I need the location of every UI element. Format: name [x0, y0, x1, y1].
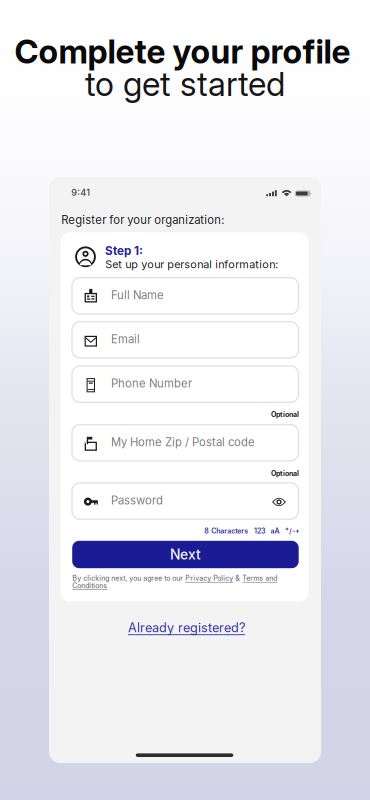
staticText: 123 — [254, 527, 265, 535]
staticText: Phone Number — [111, 377, 192, 390]
staticText: Optional — [271, 410, 299, 419]
staticText: Register for your organization: — [61, 213, 224, 227]
button[interactable]: Full Name — [72, 278, 298, 314]
staticText: Conditions — [72, 581, 107, 590]
button[interactable]: Already registered? — [128, 620, 245, 635]
staticText: Optional — [271, 469, 299, 478]
staticText: */-+ — [285, 527, 300, 535]
staticText: Step 1: — [105, 244, 143, 258]
staticText: Next — [170, 546, 201, 563]
staticText: Email — [111, 332, 140, 346]
staticText: Full Name — [111, 288, 164, 302]
button[interactable]: Password — [72, 483, 298, 519]
button[interactable]: My Home Zip / Postal code — [72, 425, 298, 461]
staticText: By clicking next, you agree to our — [72, 574, 185, 582]
button[interactable]: Privacy Policy — [185, 574, 233, 582]
staticText: 9:41 — [71, 187, 90, 198]
staticText: Privacy Policy — [185, 574, 233, 582]
staticText: to get started — [85, 64, 285, 104]
staticText: My Home Zip / Postal code — [111, 435, 255, 449]
button[interactable]: Terms and — [242, 574, 277, 582]
staticText: 8 Characters — [204, 527, 248, 535]
staticText: Set up your personal information: — [105, 258, 278, 271]
staticText: Complete your profile — [14, 32, 350, 71]
button[interactable]: Email — [72, 322, 298, 358]
staticText: & — [233, 574, 242, 582]
staticText: Password — [111, 493, 163, 507]
button[interactable]: Show password — [266, 489, 292, 515]
button[interactable]: Conditions — [72, 581, 107, 590]
staticText: aA — [270, 527, 279, 535]
staticText: Already registered? — [128, 620, 245, 635]
button[interactable]: Next — [72, 541, 299, 568]
button[interactable]: Phone Number — [72, 366, 298, 402]
staticText: Terms and — [242, 574, 277, 582]
